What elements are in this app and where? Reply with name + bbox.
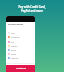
staticText: Card [11, 32, 15, 34]
staticText: Pay with Credit Card, [18, 5, 46, 9]
staticText: Klarna [11, 53, 16, 55]
staticText: Payment method [8, 23, 24, 25]
button[interactable]: Continue [6, 65, 35, 72]
button[interactable]: PayPal [6, 48, 35, 52]
button[interactable]: Card [6, 31, 35, 35]
staticText: Continue [16, 67, 26, 70]
staticText: PayPal and more [21, 9, 43, 13]
staticText: PayPal [11, 49, 16, 51]
button[interactable]: Mastercard [6, 35, 35, 39]
button[interactable]: Apple Pay [6, 56, 35, 60]
staticText: Visa [11, 41, 15, 43]
button[interactable]: Maestro [6, 44, 35, 48]
staticText: Maestro [11, 45, 18, 47]
staticText: Apple Pay [11, 57, 19, 59]
button[interactable]: Visa [6, 40, 35, 44]
staticText: Mastercard [11, 36, 20, 38]
button[interactable]: Klarna [6, 52, 35, 56]
